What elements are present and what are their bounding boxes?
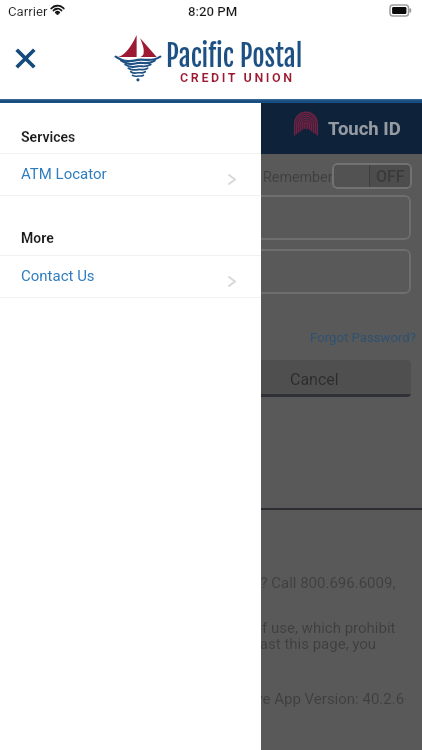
staticText: ATM Locator (21, 165, 107, 183)
button[interactable]: ATM Locator (0, 153, 261, 195)
staticText: Native App Version: 40.2.6 (228, 690, 405, 708)
staticText: Touch ID (328, 118, 401, 140)
staticText: Cancel (290, 370, 339, 389)
staticText: illegal activity. By going past this pag… (93, 635, 377, 653)
staticText: Questions? Call 800.696.6009, (193, 574, 396, 592)
staticText: More (21, 230, 54, 246)
staticText: Contact Us (21, 267, 95, 285)
staticText: OFF (376, 167, 405, 186)
staticText: Please review our terms of use, which pr… (90, 619, 396, 637)
staticText: Remember (263, 169, 333, 186)
staticText: Services (21, 129, 76, 145)
button[interactable]: Close (8, 41, 42, 75)
staticText: CREDIT UNION (180, 70, 295, 85)
button[interactable]: Contact Us (0, 255, 261, 297)
button[interactable]: Text field (11, 195, 411, 240)
staticText: 8:20 PM (188, 4, 238, 19)
staticText: Pacific Postal (166, 37, 303, 74)
button[interactable]: Remember me toggle, off (332, 163, 412, 189)
button[interactable]: Forgot Password? (310, 330, 417, 345)
button[interactable]: Cancel (11, 360, 411, 397)
staticText: Carrier (8, 4, 48, 19)
button[interactable]: Text field (11, 249, 411, 294)
